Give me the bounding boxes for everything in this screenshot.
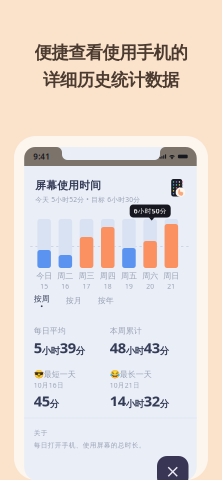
staticText: 详细历史统计数据 — [43, 69, 179, 91]
button[interactable]: 关闭 — [157, 456, 188, 480]
staticText: 周四 — [100, 271, 116, 281]
staticText: 15 — [40, 282, 48, 291]
staticText: 20 — [146, 282, 154, 291]
staticText: 17 — [82, 282, 90, 291]
staticText: 5小时39分 — [34, 338, 85, 357]
staticText: 18 — [104, 282, 112, 291]
staticText: 45分 — [34, 391, 59, 410]
button[interactable]: 按周 — [34, 294, 50, 307]
staticText: 6小时50分 — [134, 207, 167, 215]
staticText: 周二 — [57, 271, 73, 281]
staticText: 48小时43分 — [110, 338, 169, 357]
staticText: 每日打开手机、使用屏幕的总时长。 — [34, 441, 146, 449]
staticText: 14小时32分 — [110, 391, 169, 410]
button[interactable]: 按月 — [66, 296, 82, 305]
button[interactable]: 按年 — [98, 296, 114, 305]
staticText: 9:41 — [33, 151, 50, 162]
staticText: 今天 5小时52分 • 目标 6小时30分 — [35, 195, 140, 204]
staticText: 按周 — [34, 294, 50, 304]
staticText: 按月 — [66, 296, 82, 305]
staticText: 周六 — [142, 271, 158, 281]
staticText: 😂最长一天 — [110, 369, 152, 379]
staticText: 21 — [167, 282, 175, 291]
staticText: 每日平均 — [34, 326, 66, 336]
staticText: 屏幕使用时间 — [35, 179, 101, 192]
staticText: 今日 — [36, 271, 52, 281]
staticText: 10月16日 — [34, 381, 64, 389]
staticText: 周五 — [121, 271, 137, 281]
staticText: 周日 — [163, 271, 179, 281]
staticText: 😎最短一天 — [34, 369, 76, 379]
staticText: 关于 — [34, 429, 48, 437]
staticText: 便捷查看使用手机的 — [34, 42, 187, 63]
staticText: 10月21日 — [110, 381, 140, 389]
staticText: 按年 — [98, 296, 114, 305]
staticText: 19 — [125, 282, 133, 291]
staticText: 16 — [61, 282, 69, 291]
staticText: 周三 — [78, 271, 94, 281]
staticText: 本周累计 — [110, 326, 142, 336]
